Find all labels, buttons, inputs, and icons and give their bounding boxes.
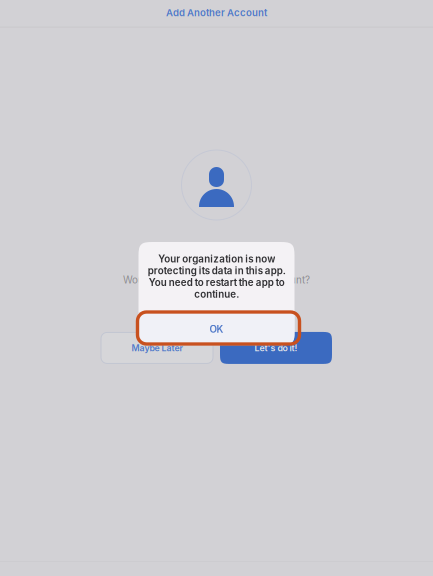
- button[interactable]: Let's do it!: [220, 332, 332, 364]
- staticText: Would you like to add another account?: [123, 274, 310, 286]
- staticText: OK: [209, 323, 223, 335]
- staticText: Your organization is now protecting its …: [147, 253, 285, 300]
- staticText: Maybe Later: [131, 343, 182, 353]
- button[interactable]: Add Another Account: [0, 0, 433, 27]
- staticText: Let's do it!: [254, 343, 297, 353]
- button[interactable]: Maybe Later: [101, 332, 213, 363]
- staticText: Add Another Account: [166, 7, 267, 19]
- button[interactable]: OK: [138, 313, 294, 345]
